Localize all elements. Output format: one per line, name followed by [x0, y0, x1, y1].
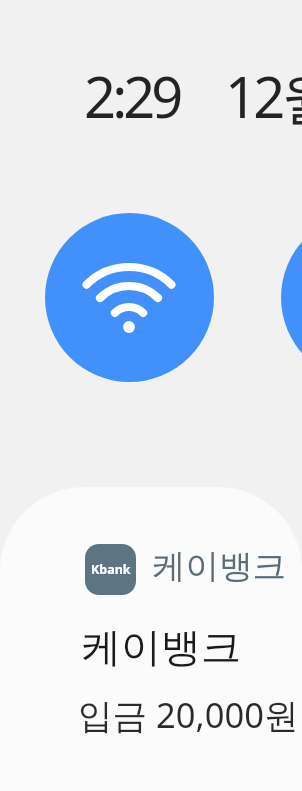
staticText: 12월: [225, 58, 302, 134]
staticText: 입금 20,000원: [78, 691, 299, 738]
button[interactable]: Sound: [281, 213, 302, 382]
staticText: 케이뱅크: [81, 622, 241, 672]
staticText: 케이뱅크: [152, 546, 286, 588]
staticText: Kbank: [91, 561, 131, 578]
button[interactable]: Kbank: [0, 487, 302, 791]
staticText: 2:29: [84, 58, 180, 134]
button[interactable]: Wi-Fi: [45, 213, 214, 382]
